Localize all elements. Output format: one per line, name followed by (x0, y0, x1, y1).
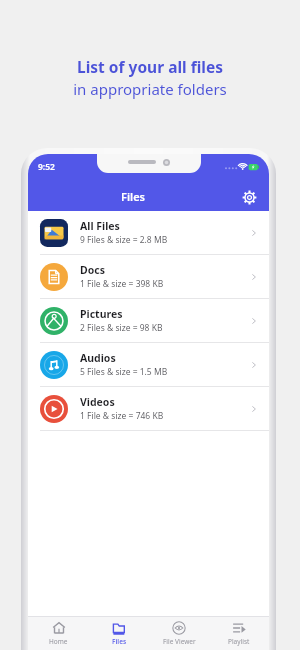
staticText: Home (49, 637, 68, 646)
button[interactable]: Pictures (28, 299, 269, 342)
staticText: 1 File & size = 398 KB (80, 278, 164, 290)
staticText: List of your all files (77, 56, 223, 77)
staticText: 9 Files & size = 2.8 MB (80, 234, 168, 246)
staticText: Docs (80, 263, 105, 277)
staticText: 1 File & size = 746 KB (80, 410, 164, 422)
staticText: 2 Files & size = 98 KB (80, 322, 163, 334)
staticText: All Files (80, 219, 120, 233)
button[interactable]: Home (28, 616, 89, 650)
button[interactable]: Audios (28, 343, 269, 386)
staticText: Pictures (80, 307, 123, 321)
staticText: Files (121, 189, 146, 204)
button[interactable]: File Viewer (149, 616, 209, 650)
button[interactable]: Settings (238, 186, 260, 208)
button[interactable]: All Files (28, 211, 269, 254)
button[interactable]: Videos (28, 387, 269, 430)
staticText: Audios (80, 351, 116, 365)
staticText: in appropriate folders (73, 79, 227, 99)
staticText: 9:52 (38, 161, 55, 173)
button[interactable]: Docs (28, 255, 269, 298)
staticText: 5 Files & size = 1.5 MB (80, 366, 168, 378)
staticText: Videos (80, 395, 115, 409)
staticText: Files (112, 637, 127, 646)
button[interactable]: Files (89, 616, 149, 650)
button[interactable]: Playlist (209, 616, 269, 650)
staticText: Playlist (228, 637, 250, 646)
staticText: File Viewer (163, 637, 196, 646)
